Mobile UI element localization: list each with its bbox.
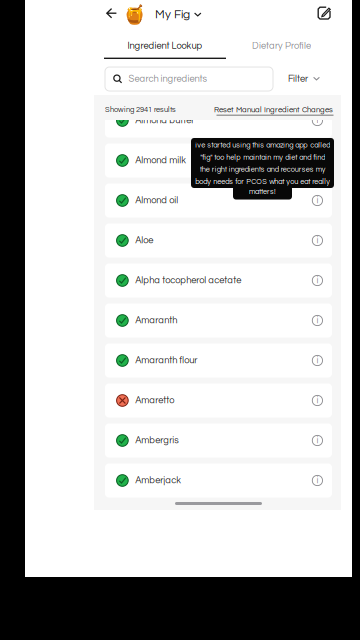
staticText: My Fig (155, 8, 190, 21)
button[interactable]: Aloe (105, 223, 332, 257)
staticText: i (316, 156, 318, 165)
staticText: Almond butter (135, 116, 194, 125)
staticText: ive started using this amazing app calle… (195, 141, 330, 185)
button[interactable]: Almond milk (105, 143, 332, 177)
button[interactable]: Back (101, 3, 122, 23)
staticText: i (316, 396, 318, 405)
staticText: i (316, 356, 318, 365)
staticText: i (316, 316, 318, 325)
staticText: i (316, 436, 318, 445)
staticText: Almond oil (135, 196, 178, 205)
staticText: Aloe (135, 236, 153, 245)
button[interactable]: Ingredient Lookup (104, 41, 226, 59)
button[interactable]: Amberjack (105, 463, 332, 497)
staticText: i (316, 236, 318, 245)
staticText: Amaretto (135, 396, 174, 405)
staticText: Amaranth flour (135, 356, 197, 365)
staticText: Ingredient Lookup (127, 41, 202, 51)
button[interactable]: Almond oil (105, 183, 332, 217)
button[interactable]: Dietary Profile (244, 38, 319, 54)
button[interactable]: Almond butter (105, 103, 332, 137)
staticText: 🍯 (123, 4, 146, 25)
button[interactable]: Amaranth (105, 303, 332, 337)
staticText: Almond milk (135, 156, 186, 165)
staticText: Dietary Profile (252, 41, 311, 51)
staticText: Filter (288, 74, 308, 84)
staticText: Search ingredients (128, 74, 206, 84)
staticText: i (316, 116, 318, 125)
staticText: Reset Manual Ingredient Changes (214, 106, 333, 114)
button[interactable]: Compose (313, 2, 335, 24)
button[interactable]: Ambergris (105, 423, 332, 457)
button[interactable]: Amaranth flour (105, 343, 332, 377)
button[interactable]: Reset Manual Ingredient Changes (214, 106, 336, 115)
staticText: Amberjack (135, 476, 181, 485)
staticText: Showing 2941 results (105, 106, 176, 114)
staticText: i (316, 476, 318, 485)
staticText: i (316, 196, 318, 205)
staticText: Alpha tocopherol acetate (135, 276, 241, 285)
button[interactable]: Filter (284, 70, 324, 88)
staticText: Amaranth (135, 316, 177, 325)
staticText: matters! (249, 188, 276, 196)
button[interactable]: Alpha tocopherol acetate (105, 263, 332, 297)
button[interactable]: Amaretto (105, 383, 332, 417)
staticText: i (316, 276, 318, 285)
staticText: Ambergris (135, 436, 178, 445)
